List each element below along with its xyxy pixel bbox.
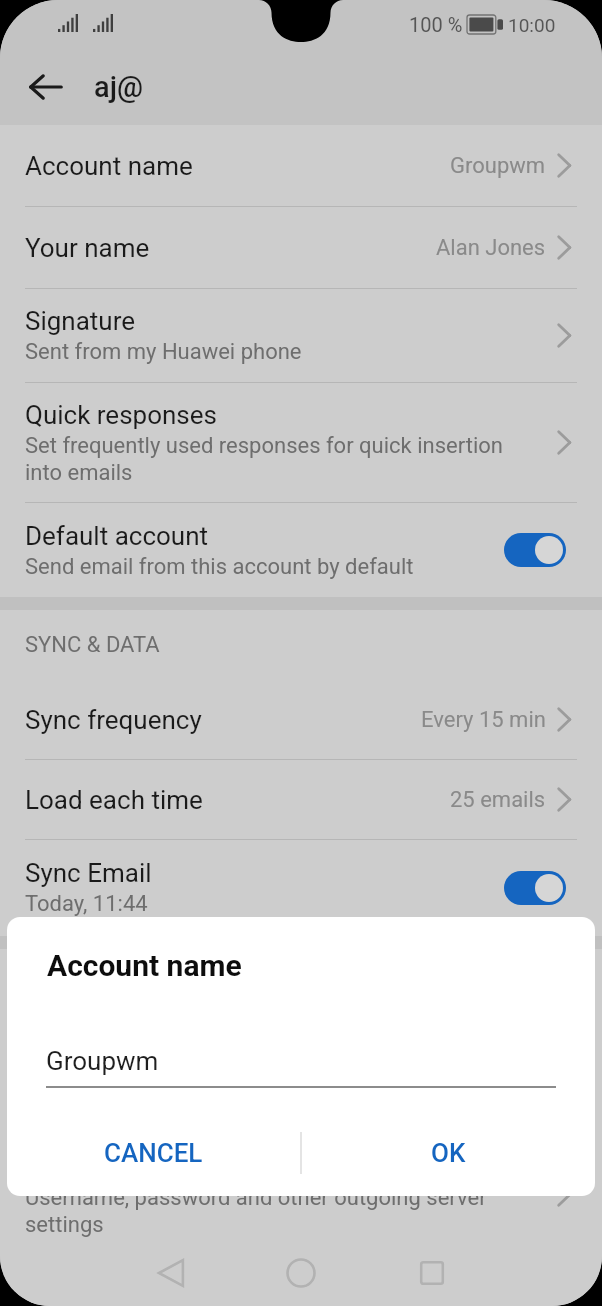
staticText: Alan Jones xyxy=(436,235,546,261)
staticText: 25 emails xyxy=(450,787,546,813)
staticText: 100 % xyxy=(409,13,463,36)
button[interactable]: Sync frequency xyxy=(0,680,602,759)
button[interactable]: Toggle Default account xyxy=(504,533,566,567)
staticText: Signature xyxy=(25,306,136,336)
staticText: Account name xyxy=(25,151,193,181)
staticText: Sync frequency xyxy=(25,705,202,735)
button[interactable]: Load each time xyxy=(0,760,602,839)
staticText: Incoming settings xyxy=(25,1035,233,1065)
staticText: Username, password and other incoming se… xyxy=(25,1068,491,1120)
staticText: Outgoing settings xyxy=(25,1152,230,1182)
staticText: Default account xyxy=(25,521,209,551)
staticText: Sync Email xyxy=(25,858,152,888)
staticText: Set frequently used responses for quick … xyxy=(25,433,503,485)
staticText: CANCEL xyxy=(104,1138,203,1168)
staticText: Groupwm xyxy=(46,1046,159,1076)
button[interactable]: Default account xyxy=(0,503,602,597)
button[interactable]: CANCEL xyxy=(7,1120,300,1186)
staticText: Account name xyxy=(47,948,242,983)
button[interactable]: Back xyxy=(147,1250,193,1296)
staticText: SERVER SETTINGS xyxy=(25,971,212,997)
button[interactable]: OK xyxy=(302,1120,595,1186)
button[interactable]: Outgoing settings xyxy=(0,1135,602,1254)
staticText: OK xyxy=(431,1138,466,1168)
staticText: Username, password and other outgoing se… xyxy=(25,1185,487,1237)
button[interactable]: Back xyxy=(15,56,77,118)
staticText: aj@ xyxy=(94,70,143,104)
staticText: Today, 11:44 xyxy=(25,891,148,917)
button[interactable]: Sync Email xyxy=(0,840,602,935)
staticText: SYNC & DATA xyxy=(25,632,160,658)
staticText: Quick responses xyxy=(25,400,217,430)
staticText: Sent from my Huawei phone xyxy=(25,339,302,365)
staticText: Every 15 min xyxy=(421,707,546,733)
staticText: Send email from this account by default xyxy=(25,554,414,580)
button[interactable]: Signature xyxy=(0,289,602,382)
staticText: Load each time xyxy=(25,785,203,815)
button[interactable]: Home xyxy=(278,1250,324,1296)
button[interactable]: Account name xyxy=(0,125,602,206)
button[interactable]: Your name xyxy=(0,207,602,288)
staticText: Your name xyxy=(25,233,150,263)
button[interactable]: Incoming settings xyxy=(0,1019,602,1135)
staticText: Groupwm xyxy=(450,153,546,179)
button[interactable]: Recents xyxy=(409,1250,455,1296)
button[interactable]: Toggle Sync Email xyxy=(504,871,566,905)
button[interactable]: Quick responses xyxy=(0,383,602,502)
staticText: 10:00 xyxy=(508,14,556,36)
